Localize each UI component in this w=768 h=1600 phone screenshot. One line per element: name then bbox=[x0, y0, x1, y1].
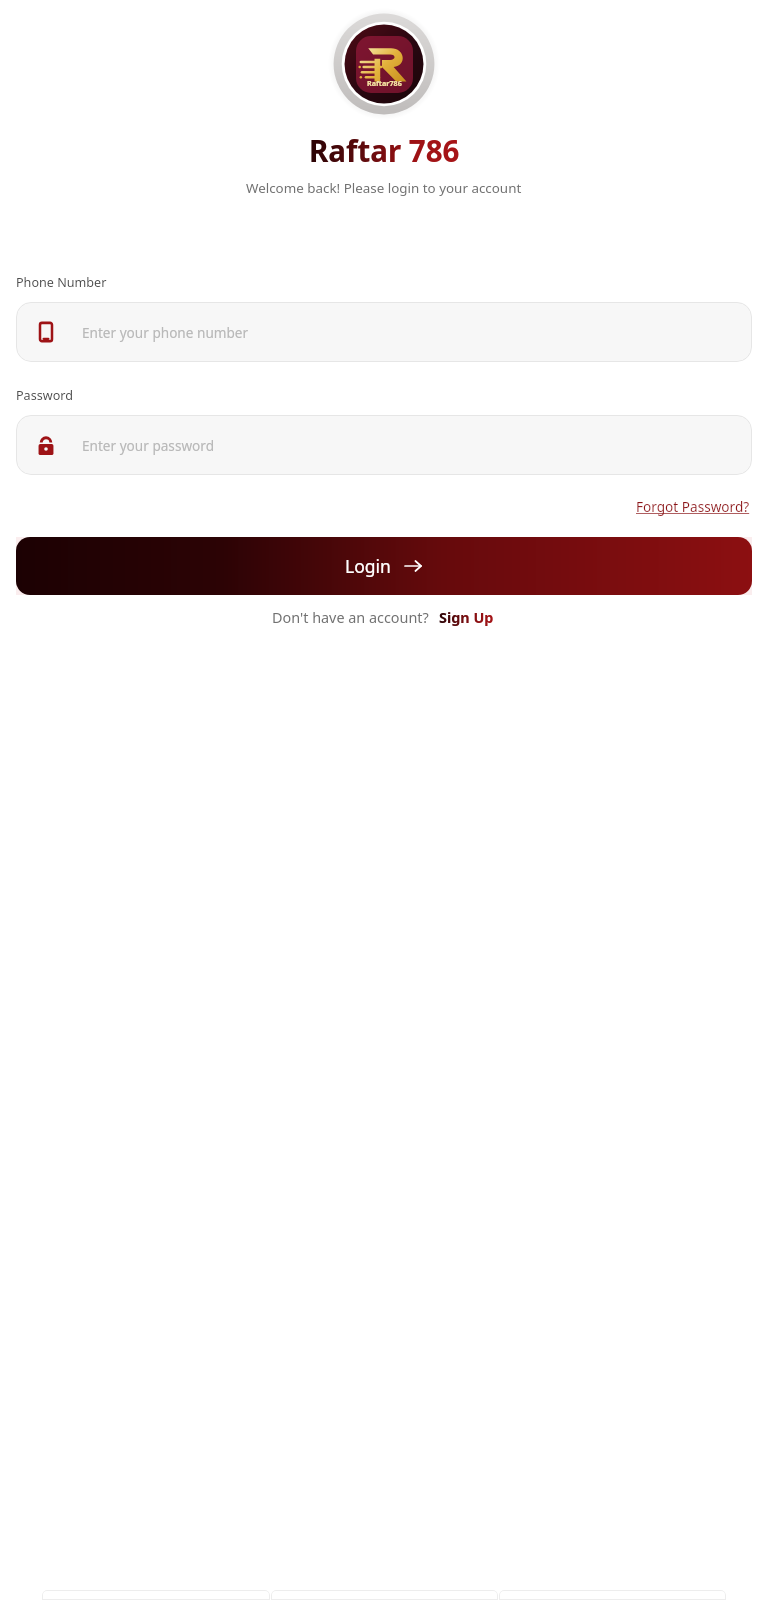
button[interactable]: Enter your password bbox=[16, 415, 752, 475]
button[interactable]: Sign Up bbox=[437, 606, 496, 630]
staticText: Raftar786 bbox=[367, 78, 402, 88]
button[interactable]: Forgot Password? bbox=[634, 494, 752, 519]
staticText: Forgot Password? bbox=[636, 497, 750, 516]
staticText: Welcome back! Please login to your accou… bbox=[246, 179, 522, 197]
staticText: Raftar 786 bbox=[309, 130, 460, 170]
staticText: Password bbox=[16, 387, 73, 404]
staticText: Phone Number bbox=[16, 274, 107, 291]
button[interactable]: Tab 3 bbox=[499, 1590, 726, 1600]
button[interactable]: Login bbox=[16, 537, 752, 595]
staticText: Enter your password bbox=[82, 436, 215, 455]
button[interactable]: Tab 1 bbox=[42, 1590, 270, 1600]
button[interactable]: Tab 2 bbox=[271, 1590, 498, 1600]
staticText: Login bbox=[345, 554, 391, 578]
button[interactable]: Enter your phone number bbox=[16, 302, 752, 362]
staticText: Sign Up bbox=[439, 608, 494, 628]
staticText: Enter your phone number bbox=[82, 323, 249, 342]
staticText: Don't have an account? bbox=[272, 608, 429, 628]
